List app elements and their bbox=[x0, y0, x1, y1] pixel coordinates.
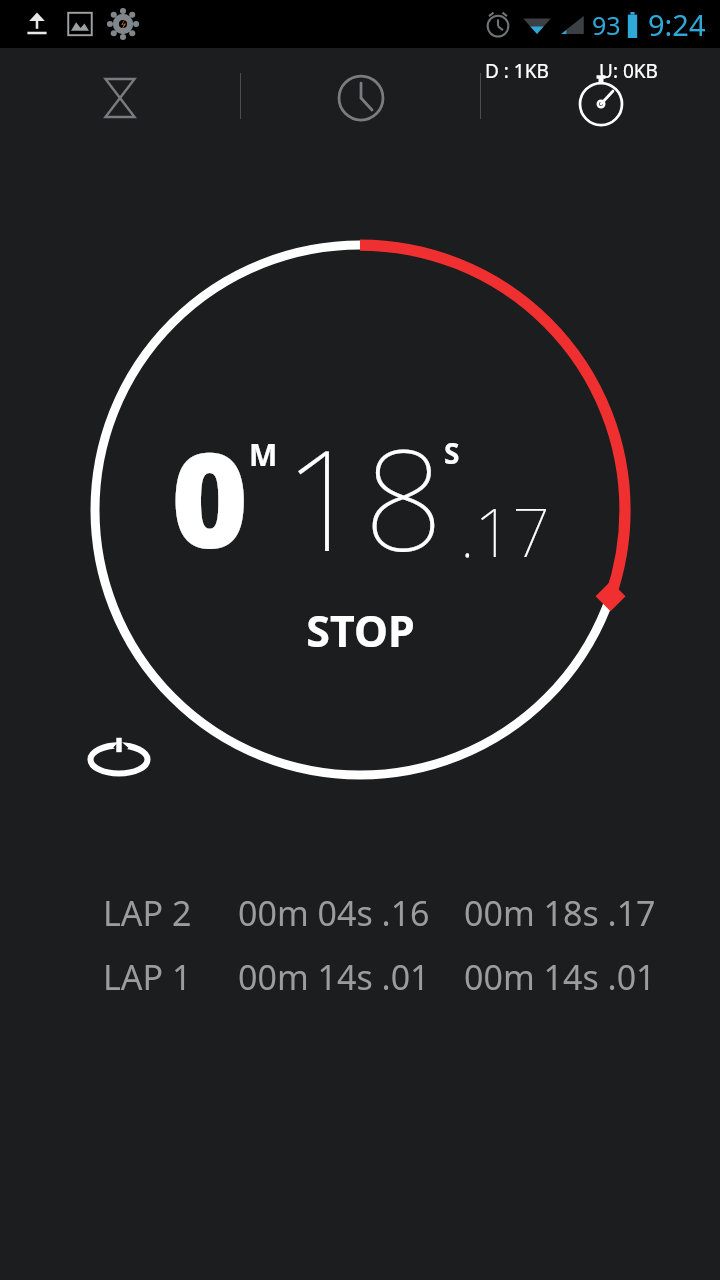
staticText: 00m 14s .01 bbox=[238, 954, 430, 1000]
staticText: LAP 1 bbox=[103, 954, 192, 1000]
staticText: 00m 14s .01 bbox=[464, 954, 656, 1000]
staticText: 9:24 bbox=[648, 5, 706, 44]
button[interactable]: LAP 2 bbox=[0, 890, 720, 936]
button[interactable]: Timer bbox=[0, 48, 240, 144]
staticText: U: 0KB bbox=[599, 58, 658, 84]
button[interactable]: Clock bbox=[241, 48, 480, 144]
button[interactable]: LAP 1 bbox=[0, 954, 720, 1000]
staticText: 00m 04s .16 bbox=[238, 890, 430, 936]
staticText: D : 1KB bbox=[485, 58, 549, 84]
staticText: 18 bbox=[284, 401, 444, 592]
button[interactable]: STOP bbox=[306, 601, 415, 660]
button[interactable]: Stopwatch bbox=[481, 48, 720, 144]
staticText: .17 bbox=[460, 486, 550, 576]
staticText: STOP bbox=[306, 601, 415, 660]
staticText: 00m 18s .17 bbox=[464, 890, 656, 936]
staticText: S bbox=[444, 434, 460, 472]
staticText: 93 bbox=[592, 8, 621, 42]
staticText: 0 bbox=[171, 407, 249, 587]
staticText: M bbox=[249, 434, 278, 475]
staticText: LAP 2 bbox=[103, 890, 192, 936]
button[interactable]: Lap bbox=[84, 730, 154, 782]
